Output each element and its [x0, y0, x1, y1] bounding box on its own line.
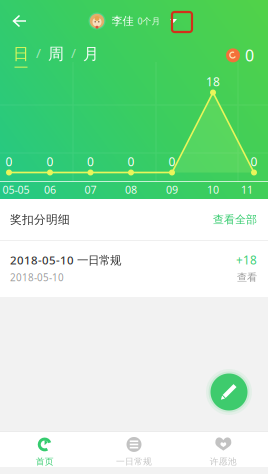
staticText: 周 — [48, 44, 64, 64]
staticText: 10 — [207, 182, 219, 197]
button[interactable]: 2018-05-10 一日常规 — [0, 241, 268, 297]
staticText: 月 — [83, 44, 99, 64]
button[interactable]: 周 — [48, 44, 64, 66]
staticText: 0 — [127, 153, 134, 169]
staticText: 0 — [46, 153, 53, 169]
staticText: 2018-05-10 — [10, 271, 64, 284]
staticText: 07 — [84, 182, 96, 197]
staticText: 06 — [44, 182, 56, 197]
button[interactable]: 一日常规 — [89, 432, 179, 467]
staticText: 奖扣分明细 — [10, 212, 70, 227]
staticText: 许愿池 — [210, 456, 237, 467]
staticText: 0 — [245, 45, 254, 66]
staticText: 0 — [5, 153, 12, 169]
staticText: 一日常规 — [116, 456, 152, 467]
button[interactable]: 0 — [226, 44, 254, 66]
staticText: 08 — [125, 182, 137, 197]
button[interactable]: Compose — [206, 369, 252, 415]
staticText: +18 — [236, 252, 257, 268]
staticText: 查看 — [237, 271, 257, 284]
button[interactable]: Back — [0, 4, 40, 38]
button[interactable]: 日 — [13, 44, 29, 66]
staticText: 李佳 — [111, 14, 133, 28]
staticText: 0 — [250, 153, 257, 169]
button[interactable]: 查看全部 — [213, 213, 257, 226]
staticText: 09 — [166, 182, 178, 197]
staticText: / — [71, 44, 76, 62]
staticText: / — [36, 44, 41, 62]
staticText: 0 — [168, 153, 175, 169]
staticText: 11 — [241, 182, 253, 197]
button[interactable]: 月 — [83, 44, 99, 66]
staticText: 首页 — [36, 456, 54, 467]
button[interactable]: 首页 — [0, 432, 89, 467]
staticText: 05-05 — [2, 182, 29, 197]
staticText: 查看全部 — [213, 213, 257, 226]
staticText: 18 — [206, 73, 220, 89]
button[interactable]: 许愿池 — [179, 432, 268, 467]
staticText: 2018-05-10 一日常规 — [10, 252, 121, 268]
button[interactable]: 李佳 — [88, 4, 179, 38]
staticText: 日 — [13, 44, 29, 64]
staticText: 0 — [87, 153, 94, 169]
staticText: 0个月 — [137, 15, 160, 27]
